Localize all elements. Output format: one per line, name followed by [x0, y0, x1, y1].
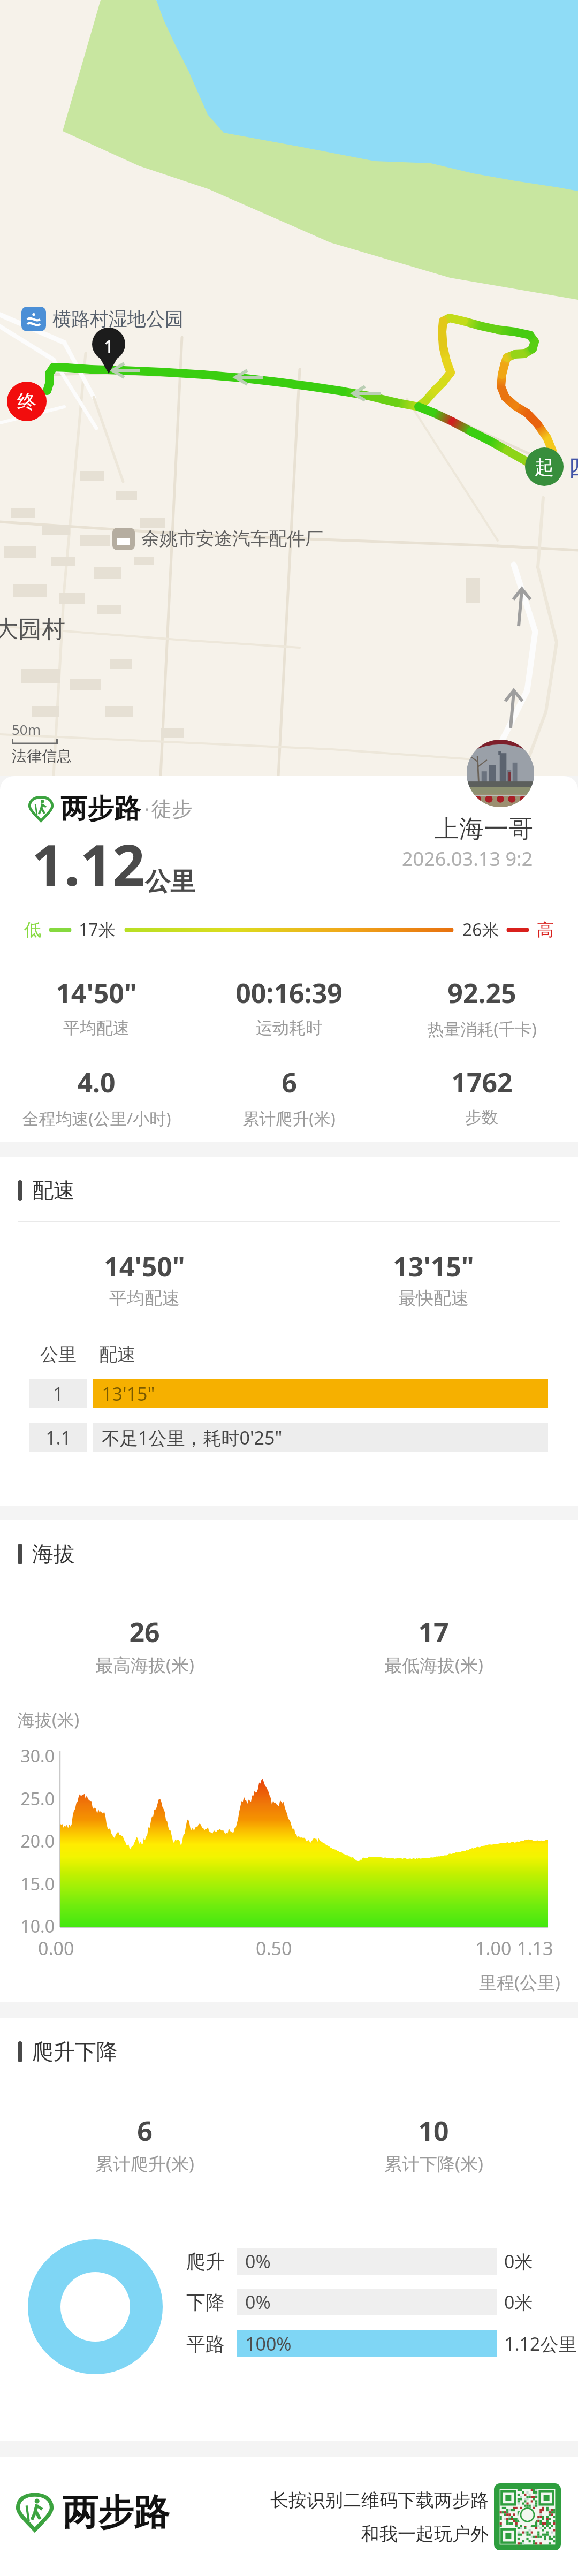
staticText: 100%: [245, 2331, 292, 2356]
staticText: 余姚市安途汽车配件厂: [141, 527, 323, 550]
staticText: 25.0: [0, 1787, 55, 1811]
staticText: 配速: [99, 1343, 135, 1366]
staticText: 0米: [504, 2249, 578, 2274]
staticText: 两步路: [60, 792, 141, 826]
staticText: 0.50: [256, 1936, 292, 1961]
staticText: 1: [104, 335, 114, 358]
staticText: 30.0: [0, 1744, 55, 1768]
staticText: 1: [53, 1381, 64, 1406]
staticText: 起: [535, 455, 554, 479]
staticText: 最高海拔(米): [95, 1653, 194, 1677]
staticText: 26: [129, 1614, 160, 1650]
staticText: 17: [418, 1614, 449, 1650]
staticText: 公里: [145, 866, 195, 898]
staticText: 横路村湿地公园: [52, 307, 184, 331]
button[interactable]: 下降: [186, 2289, 578, 2315]
staticText: 累计爬升(米): [242, 1107, 336, 1129]
staticText: 1.00: [475, 1936, 512, 1961]
staticText: 两步路: [62, 2490, 170, 2535]
staticText: 0.00: [38, 1936, 74, 1961]
staticText: 平均配速: [109, 1287, 180, 1310]
staticText: 下降: [186, 2290, 237, 2314]
staticText: 徒步: [151, 796, 192, 822]
staticText: 15.0: [0, 1872, 55, 1896]
button[interactable]: 1.1: [29, 1423, 548, 1452]
staticText: ·: [144, 797, 150, 822]
staticText: 运动耗时: [256, 1017, 322, 1038]
button[interactable]: 1: [29, 1379, 548, 1408]
staticText: 高: [537, 919, 554, 940]
staticText: 最快配速: [398, 1287, 469, 1310]
staticText: 1.13: [517, 1936, 553, 1961]
staticText: 上海一哥: [435, 814, 533, 845]
staticText: 4.0: [77, 1064, 116, 1100]
staticText: 累计下降(米): [384, 2152, 483, 2176]
staticText: 步数: [465, 1107, 498, 1128]
staticText: 法律信息: [12, 747, 72, 765]
button[interactable]: 平路: [186, 2330, 578, 2357]
staticText: 10: [418, 2113, 449, 2149]
staticText: 0米: [504, 2290, 578, 2314]
staticText: 92.25: [447, 975, 516, 1011]
staticText: 不足1公里，耗时0'25": [102, 1425, 283, 1450]
staticText: 公里: [40, 1343, 77, 1366]
staticText: 爬升下降: [32, 2038, 118, 2065]
staticText: 0%: [245, 2290, 271, 2314]
staticText: 1.12: [32, 825, 145, 902]
staticText: 14'50": [104, 1248, 185, 1285]
staticText: 海拔(米): [18, 1708, 80, 1731]
staticText: 1.1: [45, 1425, 72, 1450]
staticText: 四: [568, 454, 578, 482]
staticText: 海拔: [32, 1540, 75, 1567]
staticText: 14'50": [56, 975, 137, 1011]
staticText: 17米: [79, 918, 116, 941]
staticText: 里程(公里): [479, 1970, 560, 1994]
staticText: 20.0: [0, 1829, 55, 1853]
staticText: 热量消耗(千卡): [427, 1017, 537, 1040]
staticText: 配速: [32, 1177, 75, 1204]
staticText: 10.0: [0, 1914, 55, 1938]
staticText: 全程均速(公里/小时): [22, 1107, 171, 1129]
staticText: 爬升: [186, 2250, 237, 2274]
staticText: 50m: [12, 720, 41, 739]
staticText: 6: [282, 1064, 297, 1100]
button[interactable]: 爬升: [186, 2248, 578, 2275]
staticText: 平均配速: [63, 1017, 130, 1038]
staticText: 1762: [451, 1064, 513, 1100]
staticText: 低: [24, 919, 41, 940]
staticText: 和我一起玩户外: [361, 2522, 489, 2545]
staticText: 2026.03.13 9:2: [402, 846, 533, 872]
staticText: 13'15": [393, 1248, 474, 1285]
staticText: 0%: [245, 2249, 271, 2274]
staticText: 终: [17, 390, 36, 414]
staticText: 1.12公里: [504, 2331, 578, 2356]
staticText: 26米: [462, 918, 499, 941]
staticText: 累计爬升(米): [95, 2152, 194, 2176]
staticText: 最低海拔(米): [384, 1653, 483, 1677]
staticText: 平路: [186, 2332, 237, 2356]
staticText: 6: [137, 2113, 153, 2149]
staticText: 13'15": [102, 1381, 155, 1406]
staticText: 大园村: [0, 614, 65, 644]
staticText: 长按识别二维码下载两步路: [270, 2489, 489, 2512]
staticText: 00:16:39: [235, 975, 343, 1011]
